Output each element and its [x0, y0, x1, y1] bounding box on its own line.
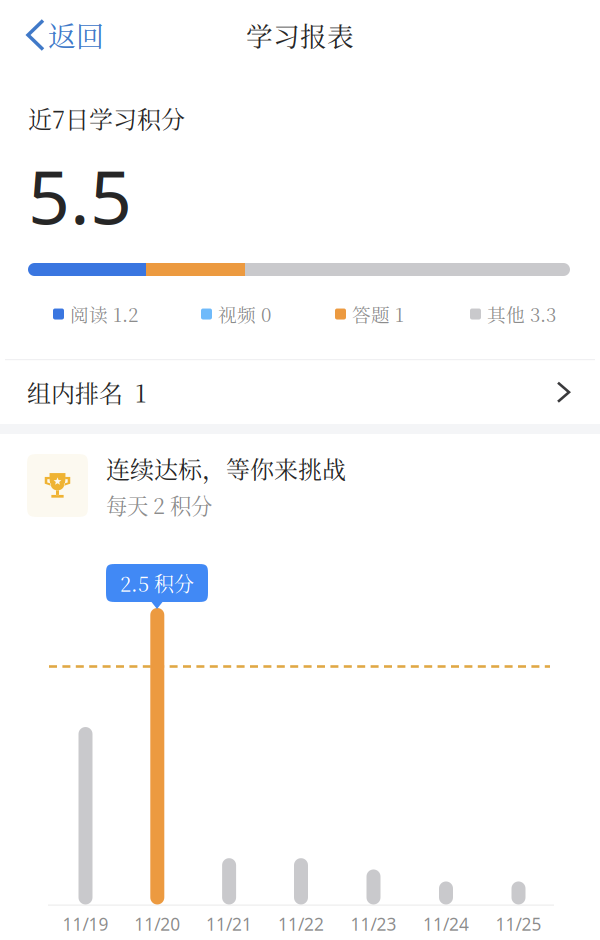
- staticText: 11/24: [423, 912, 469, 935]
- staticText: 11/21: [206, 912, 252, 935]
- button[interactable]: 连续达标，等你来挑战: [0, 454, 600, 517]
- staticText: 阅读 1.2: [70, 301, 138, 327]
- staticText: 每天 2 积分: [106, 489, 212, 520]
- staticText: 11/20: [134, 912, 180, 935]
- button[interactable]: 组内排名 1: [0, 360, 600, 424]
- staticText: 组内排名 1: [27, 375, 146, 409]
- button[interactable]: 返回: [0, 0, 118, 70]
- staticText: 其他 3.3: [487, 301, 556, 327]
- staticText: 11/23: [350, 912, 396, 935]
- staticText: 视频 0: [218, 301, 271, 327]
- staticText: 11/19: [62, 912, 108, 935]
- staticText: 连续达标，等你来挑战: [106, 451, 346, 485]
- staticText: 返回: [48, 15, 104, 55]
- staticText: 5.5: [28, 147, 132, 245]
- staticText: 答题 1: [352, 301, 404, 327]
- staticText: 学习报表: [246, 16, 354, 54]
- staticText: 11/25: [495, 912, 541, 935]
- staticText: 2.5 积分: [120, 569, 194, 597]
- staticText: 11/22: [278, 912, 324, 935]
- staticText: 近7日学习积分: [28, 101, 185, 135]
